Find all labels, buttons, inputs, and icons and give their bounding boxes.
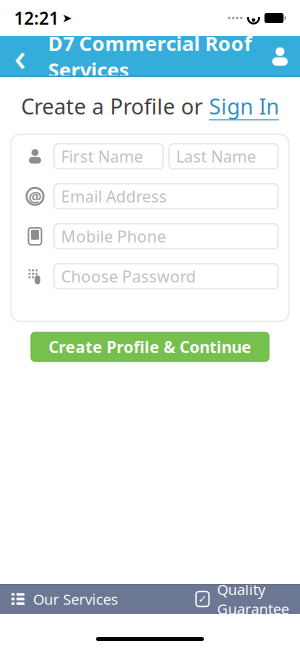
staticText: Sign In <box>209 92 279 120</box>
button[interactable]: Account <box>260 36 300 77</box>
staticText: Create a Profile or <box>21 92 209 120</box>
staticText: ‹ <box>14 32 26 81</box>
button[interactable]: Create Profile & Continue <box>31 332 269 361</box>
staticText: Email Address <box>61 186 167 207</box>
staticText: 12:21 <box>14 6 59 29</box>
staticText: D7 Commercial Roof Services <box>48 30 252 83</box>
button[interactable]: ✓ <box>150 584 300 614</box>
staticText: Our Services <box>33 589 118 609</box>
staticText: Quality Guarantee <box>217 579 289 618</box>
button[interactable]: Sign In <box>209 92 279 120</box>
staticText: Create Profile & Continue <box>48 336 251 357</box>
staticText: Mobile Phone <box>61 226 166 247</box>
staticText: ➤ <box>62 11 72 25</box>
staticText: Choose Password <box>61 266 196 287</box>
staticText: Last Name <box>176 146 256 167</box>
staticText: First Name <box>61 146 143 167</box>
staticText: ✓ <box>198 593 207 605</box>
button[interactable]: Our Services <box>0 584 150 614</box>
button[interactable]: Back <box>0 36 40 77</box>
staticText: @ <box>28 187 41 206</box>
